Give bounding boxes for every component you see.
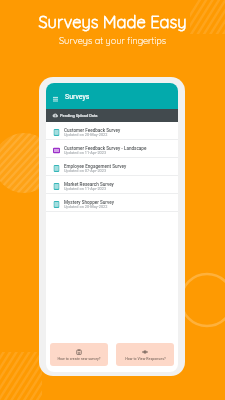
- button[interactable]: Mystery Shopper Survey: [46, 194, 178, 211]
- staticText: Mystery Shopper Survey: [64, 200, 114, 205]
- button[interactable]: Market Research Survey: [46, 176, 178, 193]
- staticText: Updated on 20-May-2022: [64, 132, 108, 137]
- staticText: How to create new survey?: [57, 357, 101, 361]
- staticText: Customer Feedback Survey: [64, 128, 121, 133]
- button[interactable]: Customer Feedback Survey: [46, 122, 178, 139]
- staticText: Surveys Made Easy: [38, 11, 187, 32]
- staticText: Updated on 20-May-2022: [64, 204, 108, 209]
- staticText: Updated on 11-Apr-2023: [64, 186, 107, 191]
- staticText: Market Research Survey: [64, 182, 114, 187]
- staticText: Updated on 11-Apr-2023: [64, 150, 107, 155]
- staticText: Pending Upload Data: [60, 113, 98, 118]
- button[interactable]: Customer Feedback Survey - Landscape: [46, 140, 178, 157]
- staticText: Surveys at your fingertips: [59, 35, 166, 46]
- staticText: Employee Engagement Survey: [64, 164, 127, 169]
- button[interactable]: How to View Responses?: [116, 343, 174, 366]
- button[interactable]: Employee Engagement Survey: [46, 158, 178, 175]
- staticText: Surveys: [65, 93, 90, 101]
- button[interactable]: How to create new survey?: [50, 343, 108, 366]
- staticText: Customer Feedback Survey - Landscape: [64, 146, 147, 151]
- staticText: How to View Responses?: [125, 357, 166, 361]
- button[interactable]: Menu: [52, 95, 59, 102]
- staticText: Updated on 07-Apr-2023: [64, 168, 107, 173]
- button[interactable]: Pending Upload Data: [46, 109, 178, 122]
